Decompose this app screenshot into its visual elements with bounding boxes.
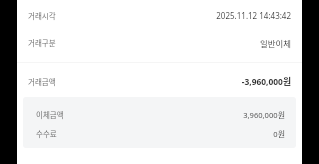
button[interactable]: 거래시각 <box>17 2 302 29</box>
button[interactable]: 거래금액 <box>17 65 302 97</box>
staticText: 이체금액 <box>36 109 64 120</box>
staticText: 0원 <box>273 128 285 140</box>
staticText: 거래구분 <box>28 37 56 48</box>
staticText: 수수료 <box>36 128 57 139</box>
staticText: 2025.11.12 14:43:42 <box>216 10 291 21</box>
button[interactable]: 거래구분 <box>17 29 302 56</box>
button[interactable]: 이체금액 <box>23 105 296 124</box>
staticText: 거래금액 <box>28 76 56 87</box>
staticText: 거래시각 <box>28 10 56 21</box>
button[interactable]: 수수료 <box>23 124 296 143</box>
staticText: 일반이체 <box>260 37 291 49</box>
staticText: -3,960,000원 <box>241 75 291 88</box>
staticText: 3,960,000원 <box>243 109 285 121</box>
